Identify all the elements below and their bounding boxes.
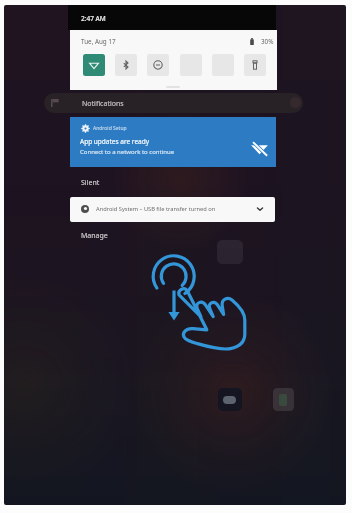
button[interactable] <box>44 93 303 113</box>
staticText: Manage <box>81 231 108 241</box>
staticText: 30% <box>261 37 274 46</box>
button[interactable]: Do Not Disturb <box>147 54 169 76</box>
staticText: Notifications <box>82 99 124 109</box>
other: Wi-Fi off <box>250 139 269 157</box>
other: Notifications icon <box>51 99 59 107</box>
other: Swipe down gesture <box>150 250 252 352</box>
button[interactable]: Flashlight <box>244 54 266 76</box>
button[interactable] <box>70 197 275 222</box>
staticText: Tue, Aug 17 <box>81 37 116 46</box>
staticText: Android System – USB file transfer turne… <box>96 205 216 213</box>
button[interactable]: Wi-Fi <box>83 54 105 76</box>
other: Expand <box>256 205 264 213</box>
staticText: 2:47 AM <box>81 14 106 23</box>
staticText: Android Setup <box>93 125 127 132</box>
staticText: Connect to a network to continue <box>80 148 175 156</box>
staticText: Silent <box>81 178 100 188</box>
staticText: App updates are ready <box>80 137 150 146</box>
button[interactable]: Bluetooth <box>115 54 137 76</box>
button[interactable] <box>70 117 276 167</box>
